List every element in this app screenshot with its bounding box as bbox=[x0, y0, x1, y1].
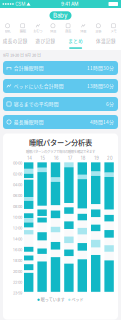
staticText: ベッド bbox=[72, 297, 84, 303]
staticText: 00:00 bbox=[13, 161, 22, 165]
staticText: 食事 bbox=[95, 29, 101, 33]
staticText: メモ bbox=[110, 29, 116, 33]
staticText: 06:00 bbox=[13, 193, 22, 198]
staticText: 合計睡眠時間 bbox=[14, 64, 44, 71]
staticText: 16:00 bbox=[13, 248, 22, 252]
staticText: 最長睡眠時間 bbox=[14, 118, 44, 125]
button[interactable]: おむつ bbox=[30, 23, 45, 34]
staticText: 14:00 bbox=[13, 237, 22, 241]
button[interactable]: 食事 bbox=[91, 23, 106, 34]
staticText: 12:00 bbox=[13, 226, 22, 230]
staticText: 04:00 bbox=[13, 183, 22, 187]
button[interactable]: 最長睡眠時間 bbox=[3, 115, 118, 129]
staticText: 13時間50分 bbox=[87, 82, 114, 89]
staticText: 睡眠パターン分析表 bbox=[29, 137, 92, 147]
button[interactable]: 体温記録 bbox=[91, 34, 121, 50]
staticText: 4時間14分 bbox=[90, 118, 114, 125]
staticText: 18 bbox=[81, 156, 86, 161]
staticText: 10:00 bbox=[13, 215, 22, 220]
button[interactable]: 身長 bbox=[61, 23, 76, 34]
staticText: 授乳 bbox=[5, 29, 11, 33]
staticText: 20:00 bbox=[13, 269, 22, 274]
staticText: 体温 bbox=[50, 29, 56, 33]
button[interactable]: 合計睡眠時間 bbox=[3, 61, 118, 75]
staticText: 16 bbox=[54, 156, 59, 161]
staticText: 14 bbox=[27, 156, 32, 161]
staticText: 23:59 bbox=[13, 291, 22, 295]
button[interactable]: メモ bbox=[106, 23, 121, 34]
staticText: 22:00 bbox=[13, 280, 22, 285]
staticText: 11時間30分 bbox=[87, 64, 114, 71]
staticText: 寝るまでの平均時間 bbox=[14, 100, 59, 107]
button[interactable]: 成長の記録 bbox=[0, 34, 30, 50]
staticText: 睡眠 bbox=[20, 29, 26, 33]
staticText: 19 bbox=[94, 156, 99, 161]
staticText: おむつ bbox=[33, 29, 42, 33]
staticText: 体温記録 bbox=[96, 37, 116, 44]
staticText: 睡眠パターンのグラフで毎日の睡眠を確認できます bbox=[26, 149, 95, 154]
button[interactable]: 遊び記録 bbox=[30, 34, 60, 50]
button[interactable]: ベッドにいた合計時間 bbox=[3, 79, 118, 93]
staticText: 17 bbox=[68, 156, 72, 161]
button[interactable]: Baby bbox=[49, 11, 71, 20]
staticText: 20 bbox=[107, 156, 113, 161]
staticText: 6分 bbox=[106, 100, 114, 107]
button[interactable]: 授乳 bbox=[0, 23, 15, 34]
button[interactable]: 寝るまでの平均時間 bbox=[3, 97, 118, 111]
staticText: 成長の記録 bbox=[3, 37, 28, 44]
button[interactable]: 体温 bbox=[45, 23, 60, 34]
staticText: 08:00 bbox=[13, 204, 22, 209]
button[interactable]: まとめ bbox=[60, 34, 91, 50]
staticText: 15 bbox=[41, 156, 46, 161]
staticText: 遊び記録 bbox=[35, 37, 55, 44]
button[interactable]: 睡眠 bbox=[15, 23, 30, 34]
button[interactable]: 体重 bbox=[76, 23, 91, 34]
staticText: CSM bbox=[15, 1, 25, 7]
staticText: 9:41 AM bbox=[61, 1, 78, 7]
staticText: 体重 bbox=[80, 29, 86, 33]
staticText: まとめ bbox=[68, 37, 83, 44]
staticText: 18:00 bbox=[13, 258, 22, 263]
staticText: Baby bbox=[53, 12, 68, 19]
staticText: ベッドにいた合計時間 bbox=[14, 82, 64, 89]
staticText: 9月 19-20 日 9月 20 日 bbox=[3, 52, 41, 58]
staticText: 眠っています bbox=[41, 297, 65, 303]
staticText: 02:00 bbox=[13, 172, 22, 176]
staticText: 身長 bbox=[65, 29, 71, 33]
